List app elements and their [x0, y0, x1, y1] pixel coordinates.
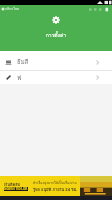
button[interactable]: Settings [52, 16, 60, 24]
staticText: NGERN TID LOR [4, 187, 28, 191]
staticText: รู้ผล อนุมัติ ภายใน 24 ชม. [33, 186, 78, 192]
staticText: ฟ [17, 73, 22, 83]
staticText: ธีมสี [17, 57, 29, 67]
staticText: เงินติดล้อ [4, 181, 21, 187]
staticText: ทำเรื่องยุ่งยากให้เป็นเรื่องง่าย [33, 180, 77, 186]
staticText: กสิกรไทย [5, 6, 20, 12]
button[interactable]: ธีมสี [0, 51, 112, 70]
staticText: การตั้งค่า [0, 31, 112, 39]
button[interactable]: เงินติดล้อ [0, 176, 112, 196]
button[interactable]: ฟ [0, 71, 112, 84]
